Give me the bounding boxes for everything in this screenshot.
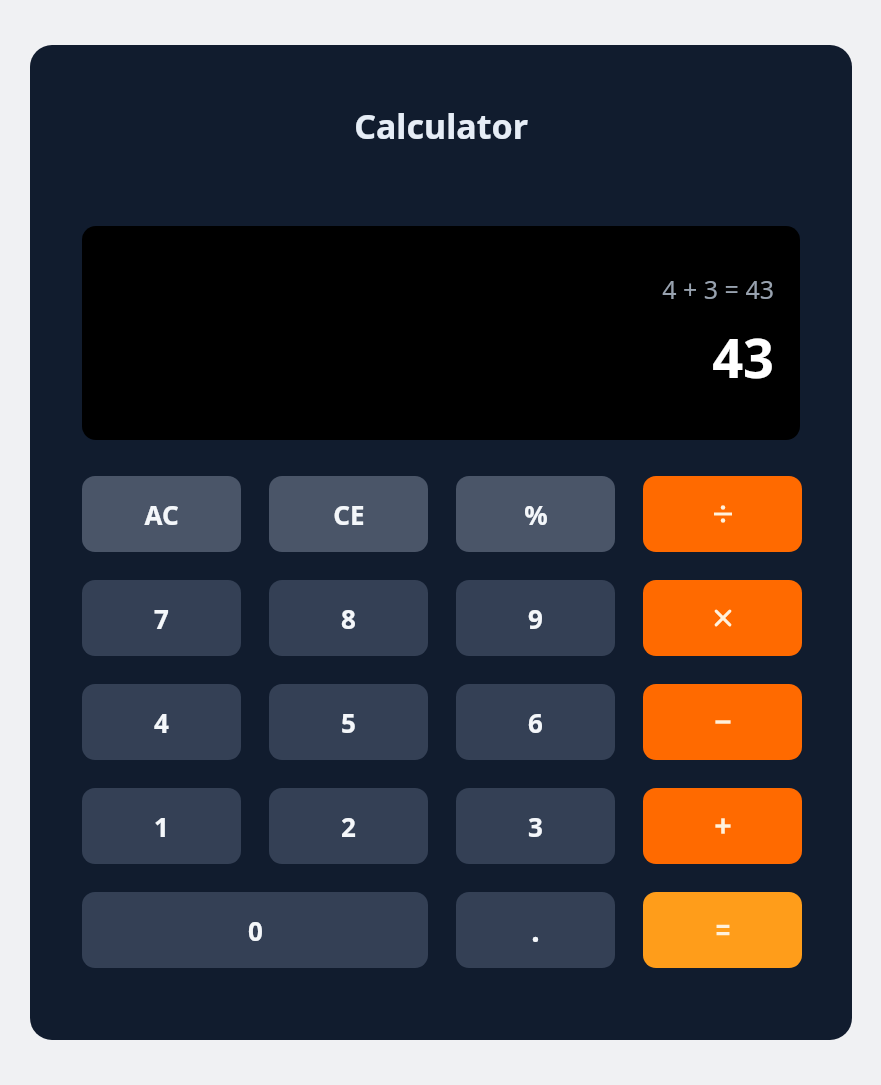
button[interactable]: Minus [643,684,802,760]
staticText: 7 [154,601,169,636]
button[interactable]: 7 [82,580,241,656]
staticText: 8 [341,601,356,636]
staticText: AC [144,497,179,532]
staticText: 1 [154,809,169,844]
button[interactable]: Plus [643,788,802,864]
button[interactable]: 1 [82,788,241,864]
button[interactable]: 5 [269,684,428,760]
staticText: 9 [528,601,543,636]
button[interactable]: 9 [456,580,615,656]
staticText: 6 [528,705,543,740]
button[interactable]: % [456,476,615,552]
button[interactable]: . [456,892,615,968]
staticText: 2 [341,809,356,844]
button[interactable]: CE [269,476,428,552]
button[interactable]: Divide [643,476,802,552]
staticText: CE [333,497,365,532]
button[interactable]: Equals [643,892,802,968]
button[interactable]: 2 [269,788,428,864]
button[interactable]: 0 [82,892,428,968]
button[interactable]: 3 [456,788,615,864]
staticText: 4 [154,705,169,740]
staticText: Calculator [354,103,528,149]
staticText: 4 + 3 = 43 [662,272,774,306]
staticText: 5 [341,705,356,740]
button[interactable]: 6 [456,684,615,760]
button[interactable]: AC [82,476,241,552]
staticText: 3 [528,809,543,844]
button[interactable]: 8 [269,580,428,656]
button[interactable]: Multiply [643,580,802,656]
staticText: 0 [248,913,263,948]
staticText: 43 [712,320,774,394]
button[interactable]: 4 [82,684,241,760]
staticText: % [524,497,548,532]
staticText: . [531,910,540,951]
